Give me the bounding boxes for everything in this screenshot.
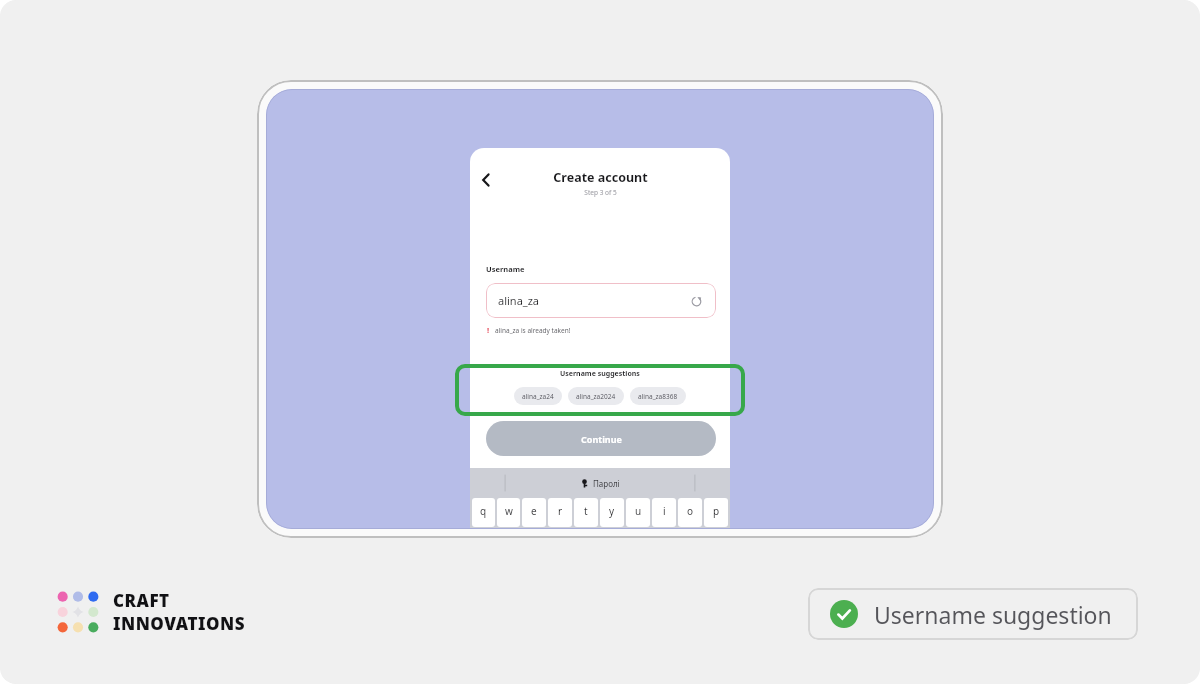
staticText: Username — [486, 264, 525, 274]
staticText: alina_za is already taken! — [495, 326, 571, 335]
button[interactable]: o — [678, 498, 702, 527]
staticText: p — [713, 504, 720, 518]
button[interactable]: p — [704, 498, 728, 527]
staticText: Username suggestions — [560, 369, 640, 379]
staticText: Username suggestion — [874, 599, 1112, 630]
staticText: q — [480, 504, 487, 518]
staticText: r — [558, 504, 563, 518]
button[interactable]: r — [548, 498, 572, 527]
staticText: ! — [487, 325, 490, 335]
staticText: alina_za24 — [522, 392, 554, 401]
button[interactable]: i — [652, 498, 676, 527]
staticText: w — [505, 504, 513, 518]
button[interactable]: Back — [472, 166, 500, 194]
button[interactable]: alina_za24 — [514, 387, 562, 405]
staticText: INNOVATIONS — [113, 612, 246, 635]
staticText: o — [687, 504, 694, 518]
button[interactable]: Refresh username — [688, 293, 704, 309]
staticText: y — [609, 504, 615, 518]
staticText: alina_za2024 — [576, 392, 616, 401]
staticText: Continue — [581, 433, 622, 445]
button[interactable]: e — [522, 498, 546, 527]
staticText: alina_za8368 — [638, 392, 678, 401]
staticText: Create account — [553, 169, 648, 186]
button[interactable]: alina_za8368 — [630, 387, 686, 405]
button[interactable]: Continue — [486, 421, 716, 456]
staticText: u — [635, 504, 642, 518]
button[interactable]: u — [626, 498, 650, 527]
staticText: CRAFT — [113, 589, 170, 612]
button[interactable]: w — [497, 498, 520, 527]
button[interactable]: y — [600, 498, 624, 527]
staticText: e — [531, 504, 537, 518]
button[interactable]: alina_za2024 — [568, 387, 624, 405]
staticText: Паролі — [593, 478, 620, 489]
staticText: alina_za — [498, 293, 540, 308]
staticText: Step 3 of 5 — [584, 188, 617, 197]
button[interactable]: alina_za — [486, 283, 716, 318]
staticText: i — [663, 504, 666, 518]
button[interactable]: q — [472, 498, 495, 527]
button[interactable]: Username suggestion — [808, 588, 1138, 640]
staticText: t — [584, 504, 588, 518]
button[interactable]: t — [574, 498, 598, 527]
